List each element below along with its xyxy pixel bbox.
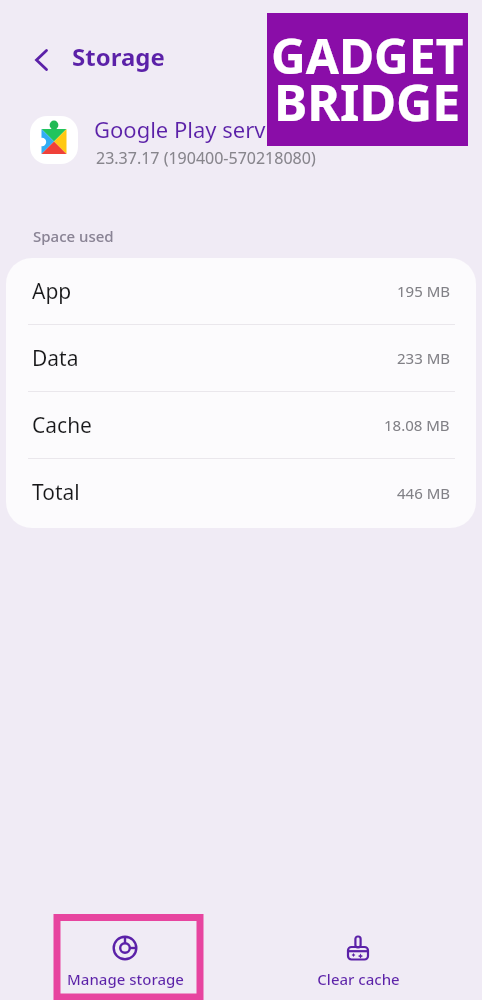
staticText: Google Play services — [94, 114, 305, 144]
staticText: 23.37.17 (190400-570218080) — [96, 147, 316, 169]
staticText: BRIDGE — [274, 68, 461, 136]
button[interactable]: Cache — [6, 392, 476, 459]
staticText: Manage storage — [67, 969, 184, 989]
staticText: App — [32, 277, 72, 306]
staticText: 195 MB — [397, 281, 450, 301]
staticText: Storage — [72, 40, 165, 73]
staticText: 18.08 MB — [384, 415, 450, 435]
staticText: Data — [32, 344, 79, 373]
staticText: 446 MB — [397, 483, 450, 503]
button[interactable]: Manage storage — [55, 917, 195, 1000]
staticText: Space used — [33, 226, 114, 246]
button[interactable]: Data — [6, 325, 476, 392]
staticText: GADGET — [271, 23, 464, 88]
staticText: Total — [32, 478, 80, 507]
button[interactable]: Total — [6, 459, 476, 526]
staticText: Cache — [32, 411, 92, 440]
button[interactable]: Clear cache — [288, 917, 428, 1000]
staticText: 233 MB — [397, 348, 450, 368]
button[interactable] — [23, 42, 59, 78]
button[interactable]: App — [6, 258, 476, 325]
staticText: Clear cache — [317, 969, 400, 989]
